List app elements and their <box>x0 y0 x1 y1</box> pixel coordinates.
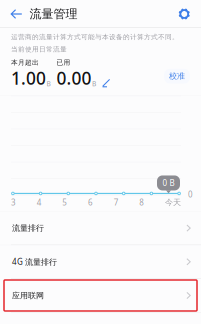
button[interactable]: 校准 <box>164 69 190 84</box>
staticText: 本月超出 <box>11 58 39 67</box>
staticText: 5 <box>62 197 67 208</box>
staticText: 0.00 <box>56 67 91 90</box>
staticText: 4 <box>37 197 42 208</box>
button[interactable]: Settings <box>178 0 201 28</box>
staticText: 8 <box>139 197 144 208</box>
staticText: 今天 <box>165 197 181 207</box>
staticText: 0 <box>188 189 193 200</box>
button[interactable]: 流量排行 <box>0 212 201 245</box>
staticText: B <box>46 79 50 88</box>
staticText: 应用联网 <box>12 291 44 300</box>
staticText: 已用 <box>56 58 70 67</box>
staticText: B <box>92 79 96 88</box>
staticText: 校准 <box>169 71 185 81</box>
staticText: 0 B <box>162 178 174 188</box>
staticText: 当前使用日常流量 <box>11 45 67 53</box>
staticText: 1.00 <box>11 67 46 90</box>
staticText: 运营商的流量计算方式可能与本设备的计算方式不同。 <box>11 33 179 41</box>
staticText: 3 <box>11 197 16 208</box>
staticText: 6 <box>88 197 93 208</box>
button[interactable]: 应用联网 <box>0 279 201 312</box>
staticText: 流量排行 <box>12 223 44 233</box>
staticText: 4G 流量排行 <box>12 256 57 267</box>
button[interactable]: 4G 流量排行 <box>0 245 201 278</box>
button[interactable]: Back <box>0 0 29 28</box>
staticText: 流量管理 <box>29 7 77 21</box>
button[interactable]: Edit allowance <box>96 79 111 90</box>
staticText: 7 <box>114 197 119 208</box>
